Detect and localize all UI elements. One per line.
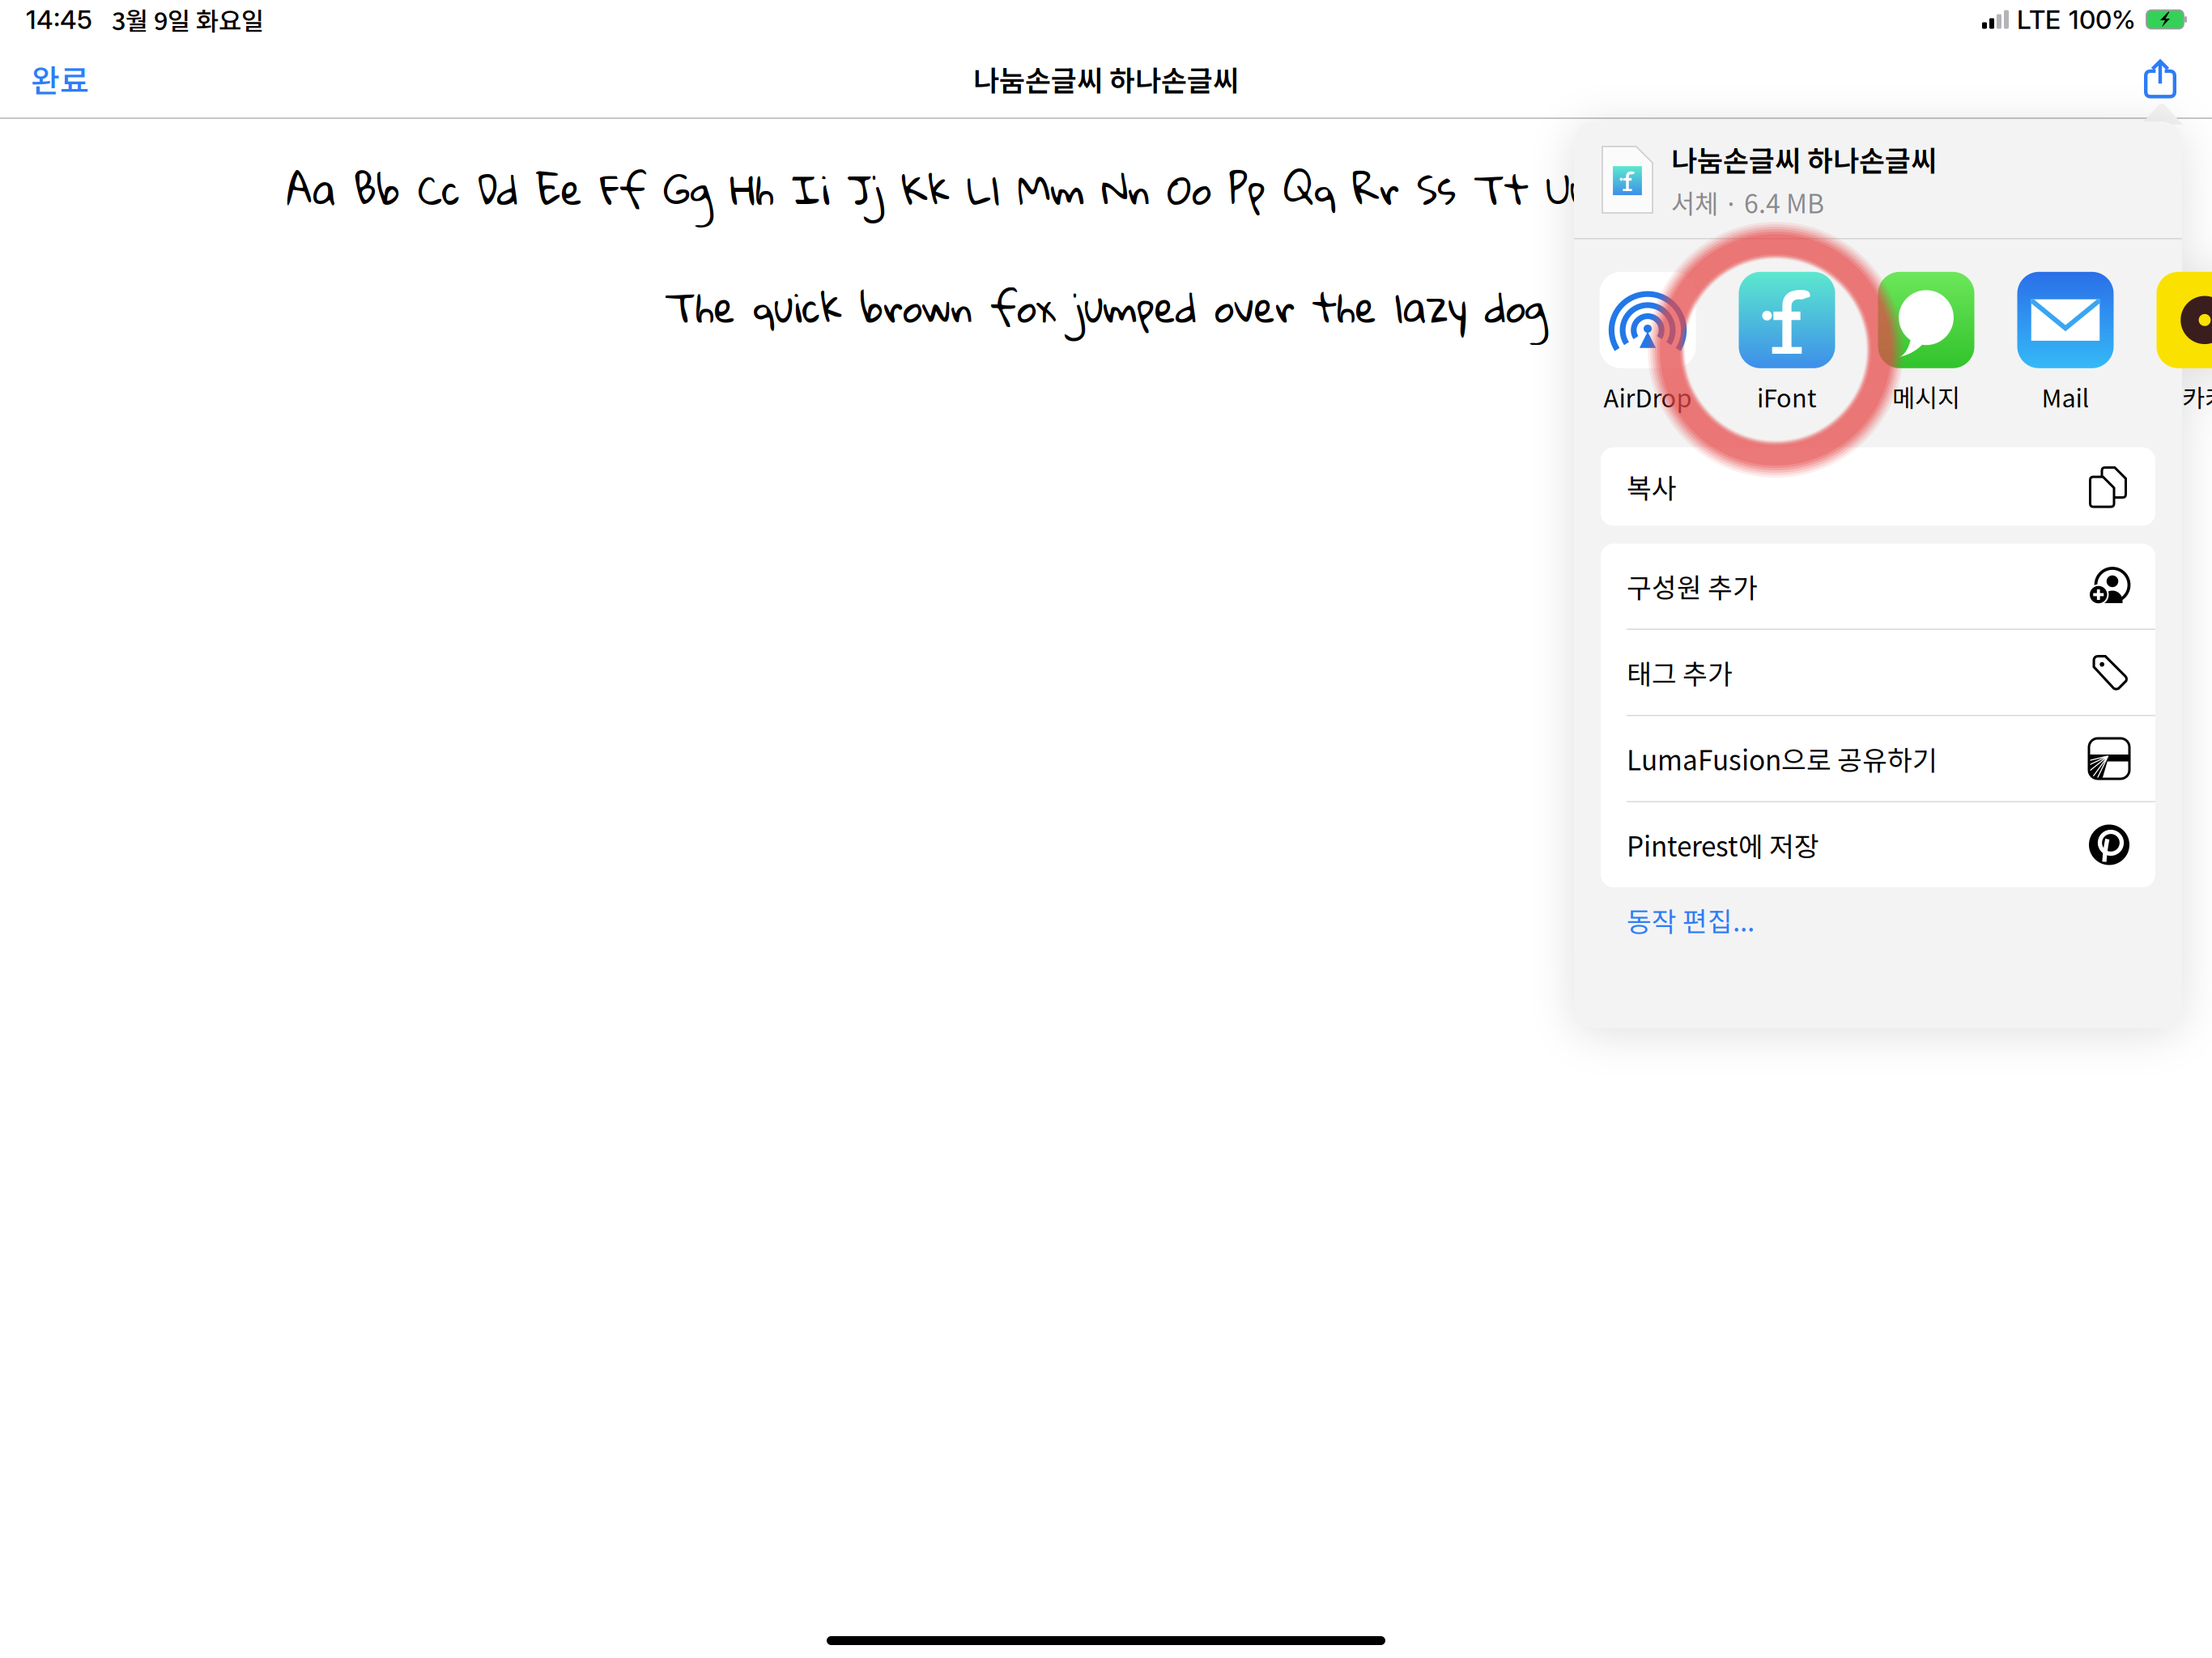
- staticText: 구성원 추가: [1627, 567, 1758, 606]
- staticText: 동작 편집...: [1627, 900, 1755, 939]
- button[interactable]: 태그 추가: [1601, 630, 2155, 715]
- staticText: 나눔손글씨 하나손글씨: [973, 59, 1239, 99]
- button[interactable]: LumaFusion으로 공유하기: [1601, 716, 2155, 801]
- button[interactable]: 구성원 추가: [1601, 544, 2155, 629]
- staticText: iFont: [1757, 379, 1817, 415]
- button[interactable]: Pinterest에 저장: [1601, 802, 2155, 887]
- staticText: 100%: [2069, 4, 2136, 35]
- staticText: 나눔손글씨 하나손글씨: [1671, 139, 1937, 179]
- button[interactable]: Mail: [1996, 272, 2135, 415]
- staticText: 3월 9일 화요일: [112, 1, 264, 37]
- staticText: The quick brown fox jumped over the lazy…: [665, 268, 1547, 345]
- staticText: Pinterest에 저장: [1627, 825, 1819, 864]
- staticText: 복사: [1627, 467, 1677, 506]
- staticText: Aa Bb Cc Dd Ee Ff Gg Hh Ii Jj Kk Ll Mm N…: [287, 150, 1925, 227]
- staticText: 메시지: [1892, 379, 1960, 415]
- button[interactable]: 동작 편집...: [1574, 887, 2182, 989]
- button[interactable]: AirDrop: [1578, 272, 1717, 415]
- staticText: 카카: [2182, 379, 2212, 415]
- staticText: Mail: [2042, 379, 2089, 415]
- button[interactable]: 메시지: [1857, 272, 1996, 415]
- button[interactable]: iFont: [1717, 272, 1857, 415]
- button[interactable]: 복사: [1601, 447, 2155, 526]
- button[interactable]: 완료: [0, 42, 120, 116]
- button[interactable]: 카카: [2135, 272, 2212, 415]
- staticText: 완료: [31, 56, 89, 102]
- staticText: 태그 추가: [1627, 653, 1733, 692]
- staticText: LumaFusion으로 공유하기: [1627, 739, 1938, 778]
- staticText: AirDrop: [1604, 379, 1692, 415]
- staticText: LTE: [2017, 4, 2061, 35]
- button[interactable]: Share: [2112, 42, 2212, 116]
- staticText: 서체 · 6.4 MB: [1671, 183, 1824, 221]
- staticText: 14:45: [26, 4, 92, 35]
